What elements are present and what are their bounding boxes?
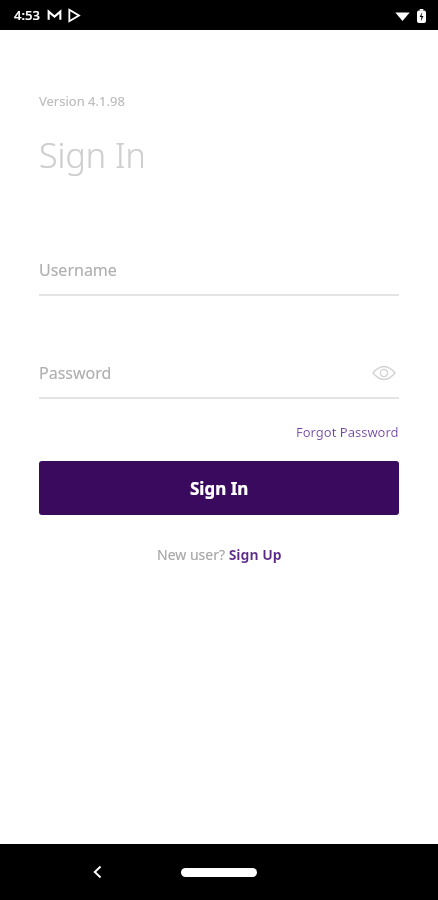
button[interactable]: New user? Sign Up xyxy=(153,543,286,566)
button[interactable]: Username xyxy=(39,252,399,296)
button[interactable]: Show password xyxy=(369,358,399,388)
button[interactable]: Home xyxy=(173,857,265,887)
button[interactable]: Sign In xyxy=(39,461,399,515)
button[interactable]: Password xyxy=(39,355,399,399)
staticText: Version 4.1.98 xyxy=(39,92,125,110)
staticText: Username xyxy=(39,259,117,281)
staticText: New user? Sign Up xyxy=(157,545,282,564)
staticText: 4:53 xyxy=(14,6,40,24)
button[interactable]: Back xyxy=(78,852,118,892)
staticText: Sign In xyxy=(39,132,146,178)
staticText: Forgot Password xyxy=(296,423,399,441)
button[interactable]: Forgot Password xyxy=(296,421,399,443)
staticText: Sign In xyxy=(190,477,249,500)
staticText: Password xyxy=(39,362,112,384)
